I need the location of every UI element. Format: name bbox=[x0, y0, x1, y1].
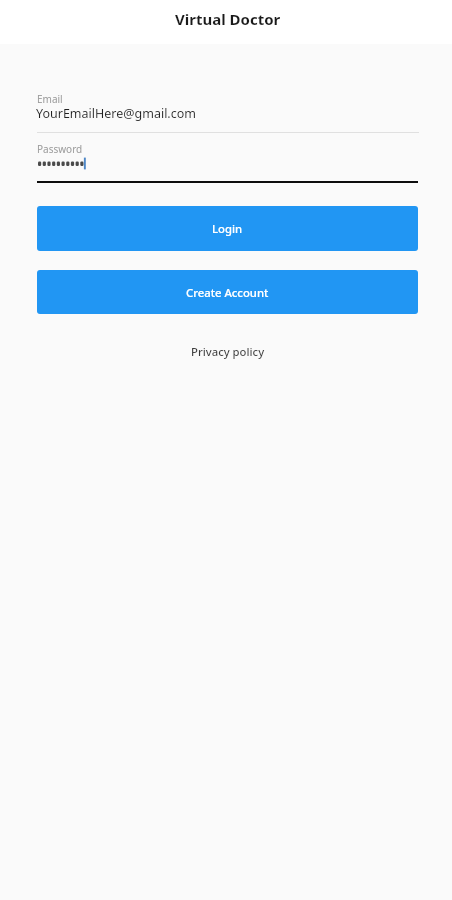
button[interactable]: Email input field bbox=[37, 88, 419, 133]
staticText: Virtual Doctor bbox=[175, 9, 281, 29]
staticText: YourEmailHere@gmail.com bbox=[36, 105, 196, 122]
staticText: Password bbox=[37, 142, 83, 156]
button[interactable]: Create Account bbox=[37, 270, 418, 314]
staticText: Email bbox=[37, 92, 63, 106]
button[interactable]: Login bbox=[37, 206, 418, 251]
staticText: Create Account bbox=[186, 285, 269, 300]
staticText: Privacy policy bbox=[191, 344, 265, 359]
button[interactable]: Privacy policy bbox=[182, 339, 274, 363]
button[interactable]: Password input field bbox=[37, 138, 418, 183]
staticText: Login bbox=[212, 221, 243, 236]
